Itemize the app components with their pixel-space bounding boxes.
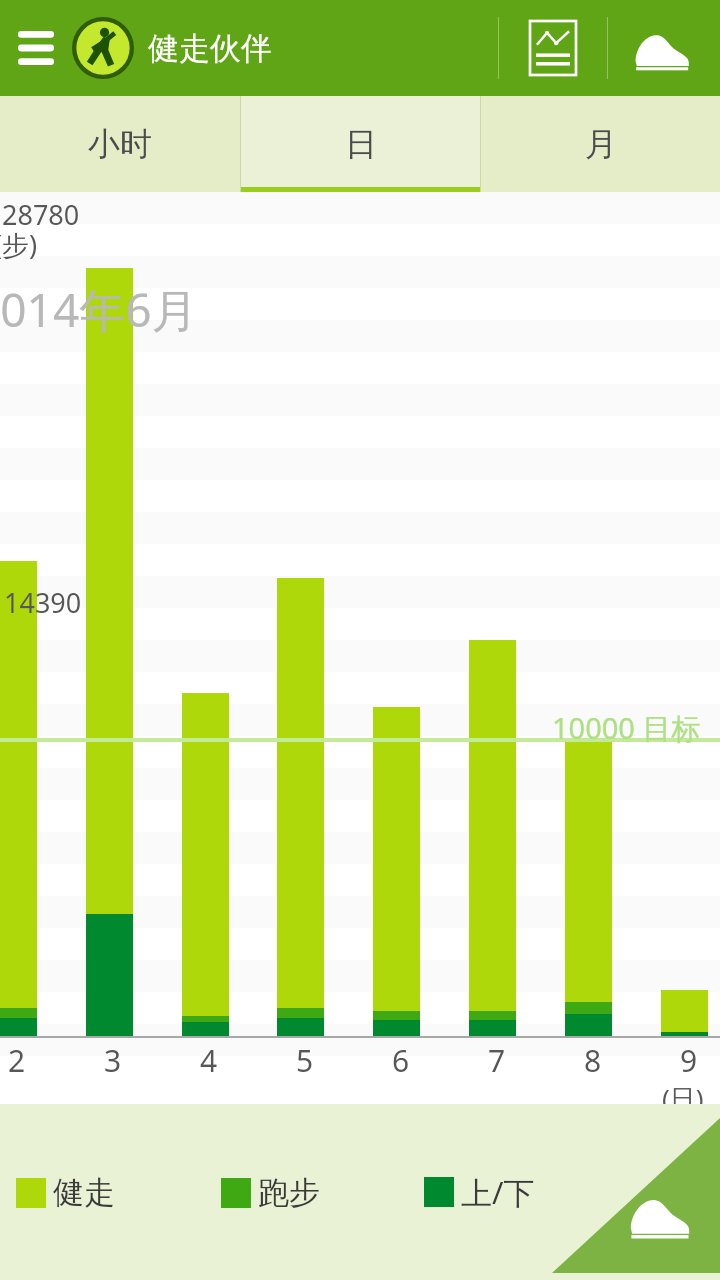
staticText: 小时 (88, 124, 152, 164)
button[interactable]: Activity (608, 0, 720, 96)
staticText: 健走 (53, 1173, 115, 1212)
staticText: 4 (200, 1040, 218, 1081)
button[interactable]: Statistics (499, 0, 607, 96)
staticText: 3 (104, 1040, 122, 1081)
button[interactable]: 上/下 (424, 1171, 535, 1213)
button[interactable]: 健走 (16, 1173, 115, 1212)
staticText: 10000 目标 (552, 708, 701, 748)
staticText: 14390 (4, 584, 82, 621)
button[interactable]: 日 (241, 96, 480, 192)
staticText: 8 (584, 1040, 602, 1081)
staticText: 9 (680, 1040, 698, 1081)
staticText: (步) (0, 226, 38, 263)
staticText: 日 (345, 124, 377, 164)
staticText: 月 (585, 124, 617, 164)
staticText: 上/下 (461, 1171, 535, 1213)
staticText: (日) (662, 1080, 704, 1104)
staticText: 2 (8, 1040, 26, 1081)
button[interactable]: 跑步 (221, 1173, 320, 1212)
button[interactable]: Start walking (604, 1164, 720, 1280)
staticText: 跑步 (258, 1173, 320, 1212)
button[interactable]: Menu (0, 0, 72, 96)
staticText: 6 (392, 1040, 410, 1081)
staticText: 健走伙伴 (148, 29, 272, 68)
staticText: 28780 (2, 196, 80, 233)
staticText: 5 (296, 1040, 314, 1081)
button[interactable]: 月 (481, 96, 720, 192)
staticText: 7 (488, 1040, 506, 1081)
staticText: 2014年6月 (0, 278, 198, 341)
button[interactable]: 小时 (0, 96, 240, 192)
